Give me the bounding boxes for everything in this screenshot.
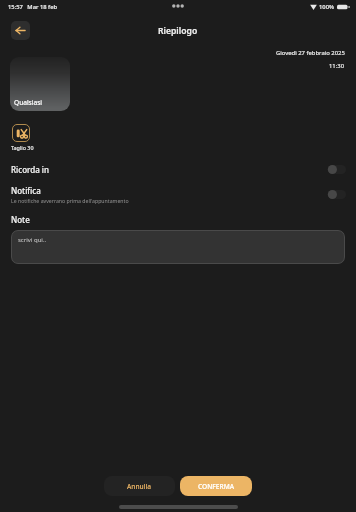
button[interactable]: Annulla: [104, 476, 175, 496]
staticText: Qualsiasi: [14, 98, 43, 107]
button[interactable]: Taglio 30: [12, 124, 30, 142]
button[interactable]: scrivi qui..: [11, 230, 345, 264]
button[interactable]: Qualsiasi: [10, 57, 70, 111]
staticText: Giovedì 27 febbraio 2025: [276, 49, 345, 57]
button[interactable]: CONFERMA: [180, 476, 252, 496]
staticText: 15:57 Mar 18 feb: [8, 3, 58, 11]
button[interactable]: Indietro: [11, 21, 30, 40]
staticText: Taglio 30: [11, 144, 34, 151]
staticText: Le notifiche avverrano prima dell'appunt…: [11, 197, 129, 204]
staticText: Notifica: [11, 185, 41, 196]
staticText: Ricorda in: [11, 164, 50, 175]
staticText: 100%: [319, 3, 334, 11]
staticText: Note: [11, 214, 30, 225]
button[interactable]: Attiva: [328, 190, 346, 199]
staticText: 11:30: [329, 62, 345, 70]
staticText: Riepilogo: [158, 25, 198, 37]
staticText: CONFERMA: [198, 482, 235, 491]
staticText: scrivi qui..: [18, 236, 47, 244]
staticText: Annulla: [127, 482, 152, 491]
button[interactable]: Attiva: [328, 165, 346, 174]
